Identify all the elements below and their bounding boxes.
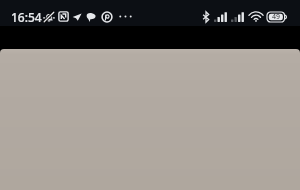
staticText: 49: [272, 12, 281, 22]
button[interactable]: Wi-Fi connected: [249, 11, 263, 22]
button[interactable]: Telegram notification: [72, 12, 82, 22]
button[interactable]: NFC enabled: [58, 11, 69, 22]
button[interactable]: Mobile signal SIM 2: [231, 12, 244, 22]
button[interactable]: Pinterest notification: [101, 11, 113, 23]
button[interactable]: 16:54: [11, 9, 42, 25]
button[interactable]: Battery 49 percent: [267, 12, 287, 22]
button[interactable]: Bluetooth on: [202, 11, 210, 23]
button[interactable]: More notifications: [119, 11, 132, 22]
button[interactable]: Message notification: [85, 11, 97, 23]
button[interactable]: Ringer off: [43, 11, 55, 23]
button[interactable]: Mobile signal SIM 1: [214, 12, 227, 22]
